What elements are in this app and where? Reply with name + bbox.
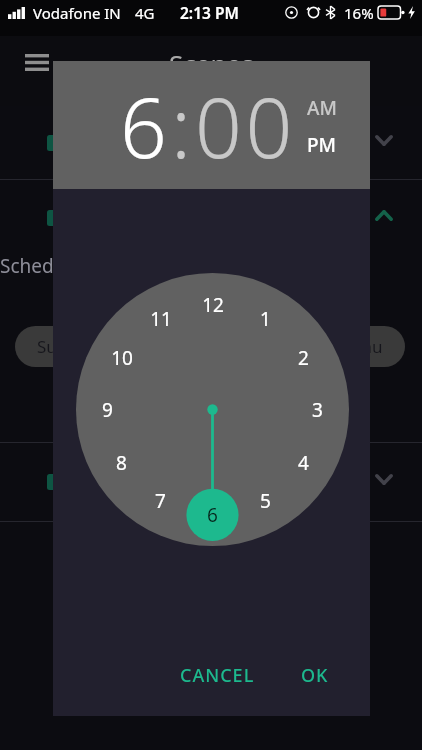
staticText: Living room	[85, 132, 175, 154]
staticText: 4	[298, 450, 309, 476]
staticText: 2	[298, 345, 309, 371]
button[interactable]: Living room	[0, 106, 422, 179]
staticText: :	[171, 70, 195, 182]
staticText: 11	[150, 306, 172, 332]
button[interactable]: OK	[291, 654, 339, 697]
staticText: 8	[116, 450, 127, 476]
button[interactable]: PM	[307, 132, 337, 158]
button[interactable]: Expand	[369, 464, 399, 494]
staticText: Vodafone IN	[33, 3, 121, 23]
button[interactable]: CANCEL	[170, 654, 265, 697]
button[interactable]: 00	[195, 70, 296, 182]
button[interactable]: Expand	[369, 125, 399, 155]
button[interactable]: 6	[120, 70, 171, 182]
staticText: 12	[202, 292, 224, 318]
staticText: 7	[155, 488, 166, 514]
staticText: 3	[312, 397, 323, 423]
staticText: Thu	[352, 335, 383, 358]
staticText: 6	[207, 502, 218, 528]
staticText: Wed	[271, 335, 307, 358]
button[interactable]: Sun	[15, 326, 89, 367]
button[interactable]: Wed	[251, 326, 326, 367]
staticText: Living room	[85, 471, 175, 493]
button[interactable]: Thu	[330, 326, 405, 367]
staticText: 1	[260, 306, 271, 332]
staticText: 16%	[344, 3, 374, 23]
staticText: 5	[260, 488, 271, 514]
button[interactable]: Mon	[93, 326, 168, 367]
staticText: Scenes	[169, 46, 254, 81]
staticText: 4G	[135, 3, 155, 23]
staticText: PM	[307, 132, 337, 158]
staticText: 10	[111, 345, 133, 371]
staticText: 2:13 PM	[180, 2, 239, 23]
staticText: 9	[102, 397, 113, 423]
button[interactable]: Living room	[0, 443, 422, 521]
staticText: Sun	[37, 335, 68, 358]
staticText: AM	[307, 95, 337, 121]
staticText: Mon	[112, 335, 149, 358]
staticText: OK	[301, 663, 329, 688]
staticText: Schedule	[0, 253, 82, 279]
button[interactable]: Living room	[0, 180, 422, 255]
button[interactable]: AM	[307, 95, 337, 121]
button[interactable]: Collapse	[369, 200, 399, 230]
staticText: CANCEL	[180, 663, 255, 688]
button[interactable]: Open navigation menu	[13, 38, 61, 86]
